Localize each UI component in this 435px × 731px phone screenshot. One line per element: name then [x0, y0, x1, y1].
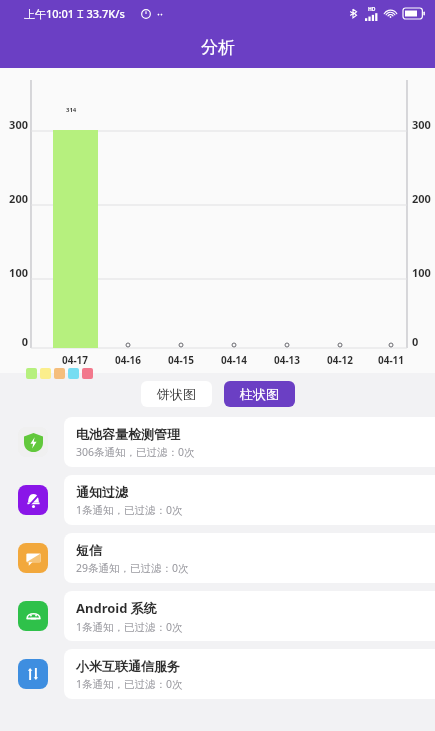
- staticText: 300: [412, 117, 431, 132]
- button[interactable]: 电池容量检测管理: [0, 417, 435, 467]
- button[interactable]: 饼状图: [141, 381, 212, 407]
- staticText: 1条通知，已过滤：0次: [76, 503, 183, 517]
- staticText: 电池容量检测管理: [76, 426, 180, 442]
- staticText: 314: [66, 106, 77, 114]
- staticText: 饼状图: [157, 386, 196, 402]
- staticText: HD: [368, 6, 376, 13]
- staticText: 200: [4, 191, 28, 206]
- button[interactable]: 小米互联通信服务: [0, 649, 435, 699]
- button[interactable]: 柱状图: [224, 381, 295, 407]
- staticText: 0: [412, 334, 419, 349]
- button[interactable]: Android 系统: [0, 591, 435, 641]
- staticText: 04-12: [320, 353, 360, 367]
- staticText: 04-14: [214, 353, 254, 367]
- staticText: 1条通知，已过滤：0次: [76, 677, 183, 691]
- staticText: 04-13: [267, 353, 307, 367]
- staticText: 通知过滤: [76, 484, 128, 500]
- staticText: 1条通知，已过滤：0次: [76, 620, 183, 634]
- staticText: 04-15: [161, 353, 201, 367]
- staticText: 短信: [76, 542, 102, 558]
- staticText: 200: [412, 191, 431, 206]
- staticText: 柱状图: [240, 386, 279, 402]
- staticText: 04-11: [371, 353, 411, 367]
- staticText: 0: [4, 334, 28, 349]
- staticText: 分析: [201, 37, 235, 58]
- staticText: Android 系统: [76, 599, 157, 617]
- staticText: 小米互联通信服务: [76, 658, 180, 674]
- button[interactable]: 短信: [0, 533, 435, 583]
- staticText: 300: [4, 117, 28, 132]
- staticText: 306条通知，已过滤：0次: [76, 445, 195, 459]
- staticText: 04-16: [108, 353, 148, 367]
- staticText: ··: [157, 6, 163, 21]
- staticText: 100: [412, 265, 431, 280]
- staticText: 29条通知，已过滤：0次: [76, 561, 189, 575]
- button[interactable]: 通知过滤: [0, 475, 435, 525]
- staticText: 上午10:01 ⌶ 33.7K/s: [24, 6, 125, 21]
- staticText: 100: [4, 265, 28, 280]
- staticText: 04-17: [55, 353, 95, 367]
